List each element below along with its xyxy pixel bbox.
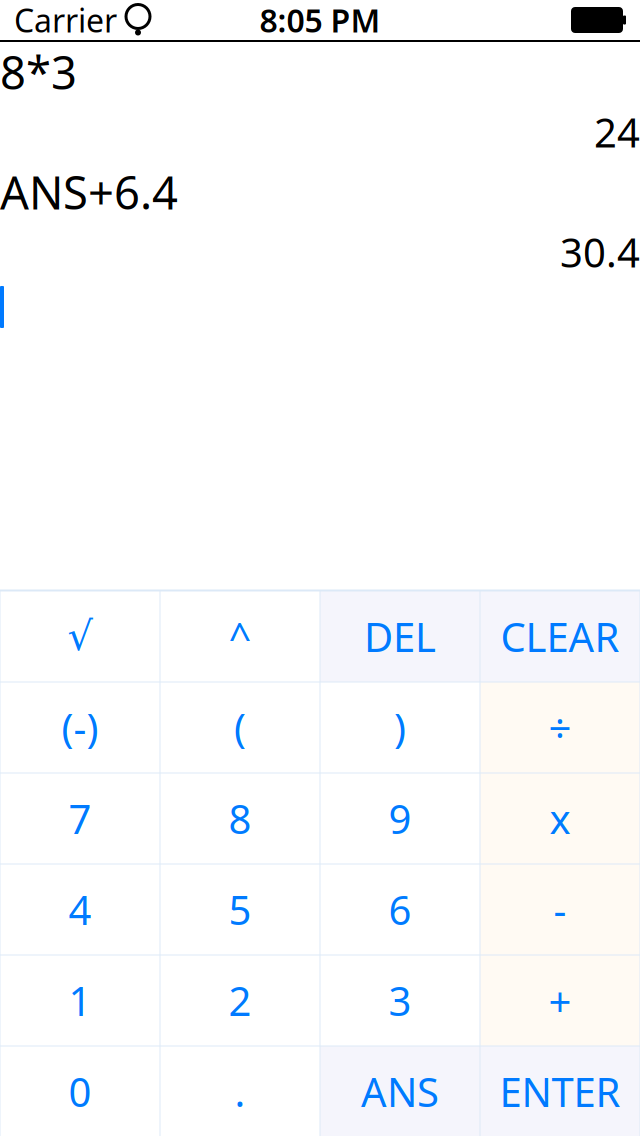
staticText: 5 [228,883,251,936]
staticText: 8:05 PM [259,0,380,41]
staticText: CLEAR [500,610,619,663]
staticText: 7 [68,792,91,845]
staticText: 8*3 [0,42,77,102]
staticText: ANS+6.4 [0,162,178,222]
staticText: . [234,1065,245,1118]
staticText: 8 [228,792,251,845]
staticText: x [549,792,570,845]
button[interactable]: ^ [160,591,319,681]
staticText: ENTER [499,1065,620,1118]
button[interactable]: 0 [0,1046,159,1136]
staticText: ) [394,701,406,754]
button[interactable]: ÷ [480,682,639,772]
button[interactable]: 8 [160,773,319,863]
staticText: 4 [68,883,91,936]
button[interactable]: ) [320,682,479,772]
staticText: 1 [68,974,91,1027]
button[interactable]: . [160,1046,319,1136]
button[interactable]: (-) [0,682,159,772]
staticText [117,0,125,41]
button[interactable]: - [480,864,639,954]
staticText: 2 [228,974,251,1027]
staticText: 30.4 [560,225,640,278]
button[interactable]: CLEAR [480,591,639,681]
staticText: 3 [388,974,411,1027]
staticText: DEL [364,610,436,663]
button[interactable]: 5 [160,864,319,954]
staticText: ÷ [548,701,571,754]
staticText: 24 [594,105,640,158]
button[interactable]: ANS [320,1046,479,1136]
staticText: (-) [61,701,98,754]
staticText: - [553,883,566,936]
button[interactable]: ( [160,682,319,772]
button[interactable]: + [480,955,639,1045]
staticText: 9 [388,792,411,845]
staticText: ^ [228,610,251,663]
button[interactable]: 6 [320,864,479,954]
staticText: 6 [388,883,411,936]
button[interactable]: 3 [320,955,479,1045]
staticText: ANS [361,1065,439,1118]
staticText: Carrier [14,0,117,41]
staticText: + [548,974,571,1027]
staticText: 0 [68,1065,91,1118]
staticText: √ [67,614,92,659]
button[interactable]: √ [0,591,159,681]
button[interactable]: 7 [0,773,159,863]
button[interactable]: x [480,773,639,863]
button[interactable]: DEL [320,591,479,681]
button[interactable]: 9 [320,773,479,863]
button[interactable]: 1 [0,955,159,1045]
button[interactable]: 2 [160,955,319,1045]
staticText: ( [234,701,246,754]
button[interactable]: 4 [0,864,159,954]
button[interactable]: ENTER [480,1046,639,1136]
